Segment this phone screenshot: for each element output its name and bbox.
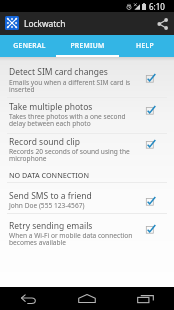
staticText: Send SMS to a friend	[9, 190, 137, 202]
staticText: PREMIUM	[70, 41, 105, 50]
button[interactable]: GENERAL	[0, 35, 58, 57]
button[interactable]	[0, 183, 174, 213]
button[interactable]: HELP	[116, 35, 174, 57]
button[interactable]: Back	[0, 287, 58, 310]
staticText: Emails you when a different SIM card is …	[9, 78, 137, 94]
staticText: HELP	[136, 41, 154, 50]
button[interactable]: PREMIUM	[58, 35, 116, 57]
staticText: Record sound clip	[9, 136, 137, 148]
button[interactable]	[0, 98, 174, 134]
button[interactable]: Home	[58, 287, 116, 310]
button[interactable]: Share	[152, 12, 174, 35]
staticText: John Doe (555 123-4567)	[9, 201, 137, 210]
staticText: 6:10	[149, 1, 165, 12]
staticText: GENERAL	[13, 41, 46, 50]
staticText: Detect SIM card changes	[9, 66, 137, 78]
button[interactable]	[0, 57, 174, 98]
staticText: Takes three photos with a one second del…	[9, 112, 137, 128]
staticText: Records 20 seconds of sound using the mi…	[9, 147, 137, 163]
staticText: NO DATA CONNECTION	[9, 170, 90, 180]
staticText: When a Wi-Fi or mobile data connection b…	[9, 231, 137, 247]
staticText: Retry sending emails	[9, 220, 137, 232]
button[interactable]	[0, 134, 174, 169]
staticText: Take multiple photos	[9, 101, 137, 113]
staticText: Lockwatch	[24, 18, 66, 29]
button[interactable]: Recent apps	[116, 287, 174, 310]
button[interactable]	[0, 214, 174, 250]
